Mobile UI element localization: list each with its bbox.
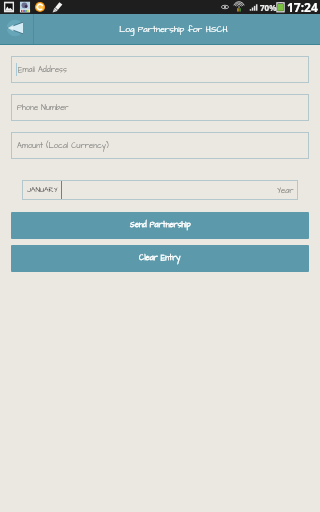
staticText: Send Partnership [130,220,191,231]
staticText: Amount (Local Currency) [17,140,109,151]
button[interactable]: Navigate up [0,14,33,45]
staticText: Email Address [18,64,67,75]
staticText: Phone Number [17,102,69,113]
button[interactable]: Clear Entry [11,245,309,272]
staticText: Year [277,185,294,196]
staticText: 17:24 [287,0,318,13]
button[interactable]: Email Address [11,56,309,83]
staticText: JANUARY [27,185,58,195]
button[interactable]: Amount (Local Currency) [11,132,309,159]
staticText: 70% [260,2,277,13]
button[interactable]: JANUARY [22,180,61,200]
staticText: Clear Entry [139,253,181,264]
button[interactable]: Year [62,180,298,200]
staticText: Log Partnership for HSCH [119,24,228,36]
button[interactable]: Phone Number [11,94,309,121]
button[interactable]: Send Partnership [11,212,309,239]
